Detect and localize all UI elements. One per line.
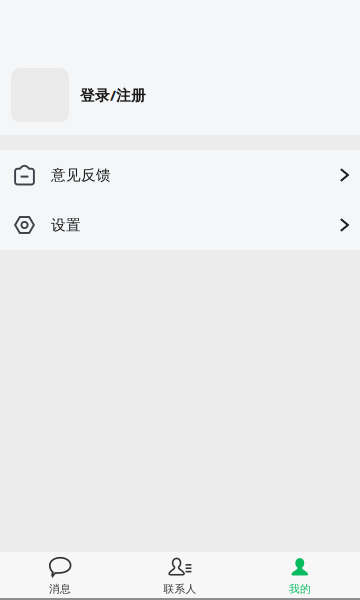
staticText: 登录/注册: [80, 85, 146, 105]
staticText: 消息: [49, 582, 71, 595]
button[interactable]: 意见反馈: [0, 150, 360, 200]
staticText: 我的: [289, 582, 311, 595]
staticText: 意见反馈: [51, 166, 111, 184]
staticText: 联系人: [163, 582, 196, 595]
button[interactable]: 消息: [0, 552, 120, 598]
button[interactable]: 我的: [240, 552, 360, 598]
button[interactable]: 设置: [0, 200, 360, 250]
button[interactable]: 联系人: [120, 552, 240, 598]
button[interactable]: 登录/注册: [0, 0, 360, 135]
staticText: 设置: [51, 216, 81, 234]
